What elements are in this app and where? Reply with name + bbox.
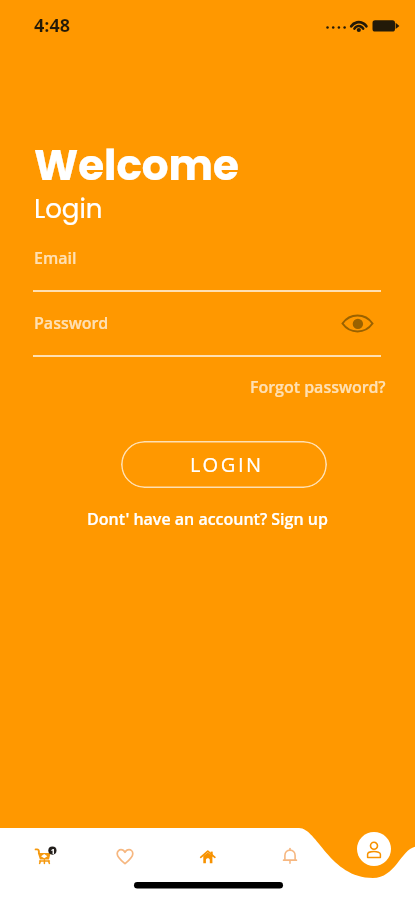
staticText: Dont' have an account? Sign up [87,508,328,530]
button[interactable]: Profile [357,832,391,866]
button[interactable]: Show password [341,307,374,340]
button[interactable]: Forgot password? [250,376,386,398]
button[interactable]: Dont' have an account? Sign up [0,508,415,530]
staticText: 1 [51,847,55,857]
button[interactable]: Cart [25,836,69,880]
button[interactable]: Favorites [103,834,147,878]
staticText: LOGIN [190,451,264,478]
staticText: 4:48 [34,13,70,38]
button[interactable]: LOGIN [121,441,327,488]
staticText: Email [34,247,77,269]
staticText: Login [34,191,103,227]
button[interactable]: Home [186,834,230,878]
staticText: Password [34,312,109,334]
staticText: Welcome [34,136,239,195]
button[interactable]: Notifications [268,834,312,878]
staticText: Forgot password? [250,376,386,398]
